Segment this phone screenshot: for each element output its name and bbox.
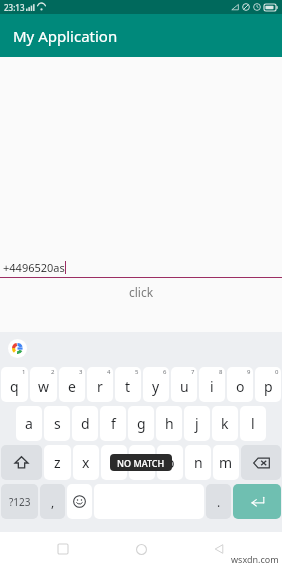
button[interactable]: w	[30, 367, 57, 402]
staticText: p	[264, 377, 273, 396]
button[interactable]: ,	[40, 484, 65, 519]
staticText: 3	[79, 368, 83, 376]
button[interactable]: Enter	[233, 484, 281, 519]
staticText: q	[10, 377, 19, 396]
button[interactable]: k	[212, 406, 238, 441]
button[interactable]: n	[185, 445, 211, 480]
button[interactable]: Recents	[48, 534, 78, 564]
staticText: x	[82, 453, 90, 472]
button[interactable]: click	[0, 278, 282, 306]
button[interactable]: g	[128, 406, 154, 441]
button[interactable]: Emoji	[67, 484, 92, 519]
button[interactable]: i	[199, 367, 225, 402]
button[interactable]: l	[240, 406, 266, 441]
staticText: d	[81, 414, 90, 433]
button[interactable]: Shift	[1, 445, 42, 480]
button[interactable]: d	[72, 406, 98, 441]
staticText: z	[54, 453, 61, 472]
staticText: u	[180, 377, 189, 396]
button[interactable]: x	[73, 445, 99, 480]
button[interactable]: Backspace	[241, 445, 281, 480]
staticText: c	[111, 453, 118, 472]
staticText: ?123	[9, 495, 31, 509]
button[interactable]: p	[255, 367, 281, 402]
staticText: 1	[22, 368, 26, 376]
button[interactable]: a	[16, 406, 42, 441]
button[interactable]: t	[115, 367, 141, 402]
button[interactable]: r	[87, 367, 113, 402]
button[interactable]: e	[59, 367, 85, 402]
staticText: n	[194, 453, 203, 472]
staticText: v	[138, 453, 146, 472]
staticText: 5	[135, 368, 139, 376]
staticText: i	[210, 377, 214, 396]
staticText: h	[165, 414, 174, 433]
staticText: e	[68, 377, 76, 396]
button[interactable]: f	[100, 406, 126, 441]
staticText: j	[195, 414, 199, 433]
staticText: r	[97, 377, 103, 396]
button[interactable]: q	[1, 367, 28, 402]
staticText: 2	[51, 368, 55, 376]
staticText: 9	[247, 368, 251, 376]
button[interactable]: j	[184, 406, 210, 441]
staticText: 23:13	[4, 2, 25, 13]
staticText: a	[25, 414, 33, 433]
button[interactable]: v	[129, 445, 155, 480]
button[interactable]: z	[44, 445, 71, 480]
staticText: w	[38, 377, 50, 396]
button[interactable]: +4496520as	[0, 252, 282, 277]
staticText: NO MATCH	[117, 457, 165, 469]
button[interactable]: y	[143, 367, 169, 402]
staticText: k	[221, 414, 229, 433]
button[interactable]: u	[171, 367, 197, 402]
staticText: b	[166, 453, 175, 472]
staticText: +4496520as	[3, 260, 65, 275]
staticText: .	[217, 494, 221, 510]
staticText: l	[251, 414, 255, 433]
staticText: g	[137, 414, 146, 433]
staticText: o	[236, 377, 245, 396]
staticText: s	[54, 414, 61, 433]
staticText: 7	[191, 368, 195, 376]
staticText: 6	[163, 368, 167, 376]
button[interactable]: Back	[204, 534, 234, 564]
staticText: y	[152, 377, 160, 396]
button[interactable]: m	[213, 445, 239, 480]
staticText: click	[129, 284, 154, 300]
button[interactable]: o	[227, 367, 253, 402]
staticText: t	[125, 377, 131, 396]
button[interactable]: s	[44, 406, 70, 441]
button[interactable]: ?123	[1, 484, 38, 519]
button[interactable]: b	[157, 445, 183, 480]
staticText: ,	[51, 494, 55, 510]
staticText: 8	[219, 368, 223, 376]
staticText: wsxdn.com	[231, 553, 279, 565]
button[interactable]: h	[156, 406, 182, 441]
button[interactable]: Home	[126, 534, 156, 564]
button[interactable]: c	[101, 445, 127, 480]
button[interactable]: .	[206, 484, 231, 519]
staticText: f	[111, 414, 116, 433]
button[interactable]: Google	[8, 339, 27, 358]
staticText: 0	[275, 368, 279, 376]
staticText: My Application	[13, 26, 118, 46]
staticText: m	[219, 453, 233, 472]
staticText: 4	[107, 368, 111, 376]
